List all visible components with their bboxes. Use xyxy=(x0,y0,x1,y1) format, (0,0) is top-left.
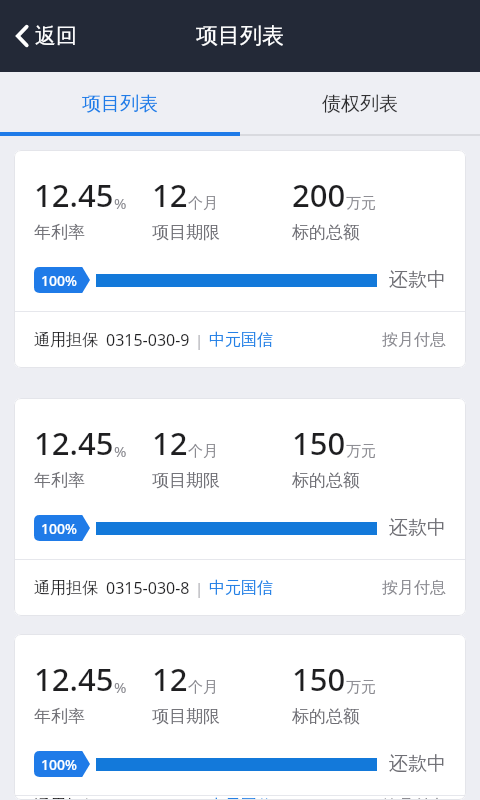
staticText: 万元 xyxy=(346,194,376,213)
staticText: 100% xyxy=(41,519,77,538)
staticText: 标的总额 xyxy=(292,222,360,243)
staticText: 200 xyxy=(292,174,346,216)
staticText: | xyxy=(195,578,204,598)
button[interactable]: 中元国信 xyxy=(209,578,273,598)
button[interactable]: 12.45 xyxy=(14,150,466,368)
staticText: | xyxy=(195,796,204,800)
button[interactable]: 12.45 xyxy=(14,398,466,616)
staticText: 标的总额 xyxy=(292,470,360,491)
staticText: 万元 xyxy=(346,678,376,697)
staticText: 150 xyxy=(292,658,346,700)
staticText: 还款中 xyxy=(389,516,446,540)
staticText: 项目期限 xyxy=(152,222,220,243)
staticText: 12 xyxy=(152,422,188,464)
staticText: 通用担保 xyxy=(34,578,98,598)
staticText: 项目期限 xyxy=(152,706,220,727)
staticText: % xyxy=(114,193,127,213)
staticText: 12.45 xyxy=(34,174,114,216)
staticText: % xyxy=(114,441,127,461)
staticText: 项目期限 xyxy=(152,470,220,491)
staticText: 通用担保 xyxy=(34,330,98,350)
staticText: 100% xyxy=(41,271,77,290)
staticText: 年利率 xyxy=(34,706,85,727)
staticText: | xyxy=(195,330,204,350)
staticText: 通用担保 xyxy=(34,796,98,800)
staticText: 还款中 xyxy=(389,752,446,776)
staticText: 按月付息 xyxy=(382,578,446,598)
staticText: 按月付息 xyxy=(382,796,446,800)
staticText: 个月 xyxy=(188,678,218,697)
button[interactable]: 中元国信 xyxy=(209,796,273,800)
staticText: 150 xyxy=(292,422,346,464)
staticText: 0315-030-9 xyxy=(106,329,190,351)
staticText: 12 xyxy=(152,658,188,700)
staticText: 0315-030-7 xyxy=(106,796,190,800)
staticText: 返回 xyxy=(35,23,77,49)
staticText: 12 xyxy=(152,174,188,216)
staticText: 按月付息 xyxy=(382,330,446,350)
staticText: 万元 xyxy=(346,442,376,461)
button[interactable]: 返回 xyxy=(0,0,95,72)
staticText: 项目列表 xyxy=(196,22,284,50)
staticText: 100% xyxy=(41,755,77,774)
staticText: 12.45 xyxy=(34,658,114,700)
staticText: 年利率 xyxy=(34,222,85,243)
staticText: 项目列表 xyxy=(82,92,158,116)
staticText: % xyxy=(114,677,127,697)
staticText: 0315-030-8 xyxy=(106,577,190,599)
button[interactable]: 债权列表 xyxy=(240,72,480,136)
button[interactable]: 项目列表 xyxy=(0,72,240,136)
staticText: 还款中 xyxy=(389,268,446,292)
button[interactable]: 12.45 xyxy=(14,634,466,800)
staticText: 标的总额 xyxy=(292,706,360,727)
staticText: 12.45 xyxy=(34,422,114,464)
staticText: 个月 xyxy=(188,442,218,461)
button[interactable]: 中元国信 xyxy=(209,330,273,350)
staticText: 年利率 xyxy=(34,470,85,491)
staticText: 债权列表 xyxy=(322,92,398,116)
staticText: 个月 xyxy=(188,194,218,213)
